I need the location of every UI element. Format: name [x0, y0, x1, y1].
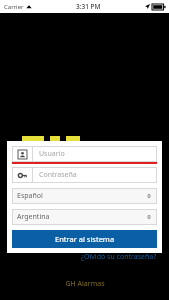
staticText: Usuario — [39, 149, 65, 159]
staticText: Español — [17, 191, 43, 201]
button[interactable]: Contraseña — [12, 167, 157, 183]
staticText: ¿Olvidó su contraseña? — [81, 252, 157, 262]
staticText: Carrier — [4, 3, 24, 11]
staticText: Argentina — [17, 212, 50, 222]
button[interactable]: ¿Olvidó su contraseña? — [79, 250, 159, 264]
staticText: GH Alarmas — [65, 279, 105, 289]
button[interactable]: Argentina — [12, 209, 157, 225]
button[interactable]: Usuario — [12, 146, 157, 162]
staticText: 3:31 PM — [76, 2, 101, 11]
staticText: Entrar al sistema — [55, 234, 115, 244]
button[interactable]: Entrar al sistema — [12, 230, 157, 248]
button[interactable]: Español — [12, 188, 157, 204]
staticText: Contraseña — [39, 170, 77, 180]
